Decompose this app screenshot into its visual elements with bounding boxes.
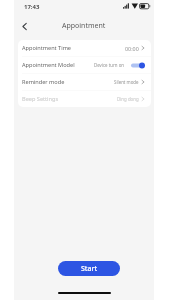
button[interactable]: Appointment model toggle — [131, 61, 145, 70]
staticText: Silent mode — [114, 79, 139, 85]
button[interactable]: Start — [58, 261, 120, 276]
staticText: 17:43 — [24, 3, 40, 11]
staticText: Start — [81, 264, 98, 274]
staticText: Appointment — [62, 21, 106, 31]
button[interactable]: Back — [16, 18, 32, 34]
button[interactable]: Reminder mode — [18, 74, 151, 90]
staticText: Ding dong — [117, 96, 139, 102]
staticText: 00:00 — [125, 45, 139, 52]
staticText: Device turn on — [94, 62, 125, 68]
button[interactable]: Appointment Model — [18, 57, 151, 73]
staticText: Beep Settings — [22, 95, 59, 103]
staticText: Appointment Model — [22, 61, 75, 69]
staticText: Reminder mode — [22, 78, 65, 86]
button[interactable]: Beep Settings — [18, 91, 151, 107]
staticText: Appointment Time — [22, 44, 72, 52]
button[interactable]: Appointment Time — [18, 40, 151, 56]
